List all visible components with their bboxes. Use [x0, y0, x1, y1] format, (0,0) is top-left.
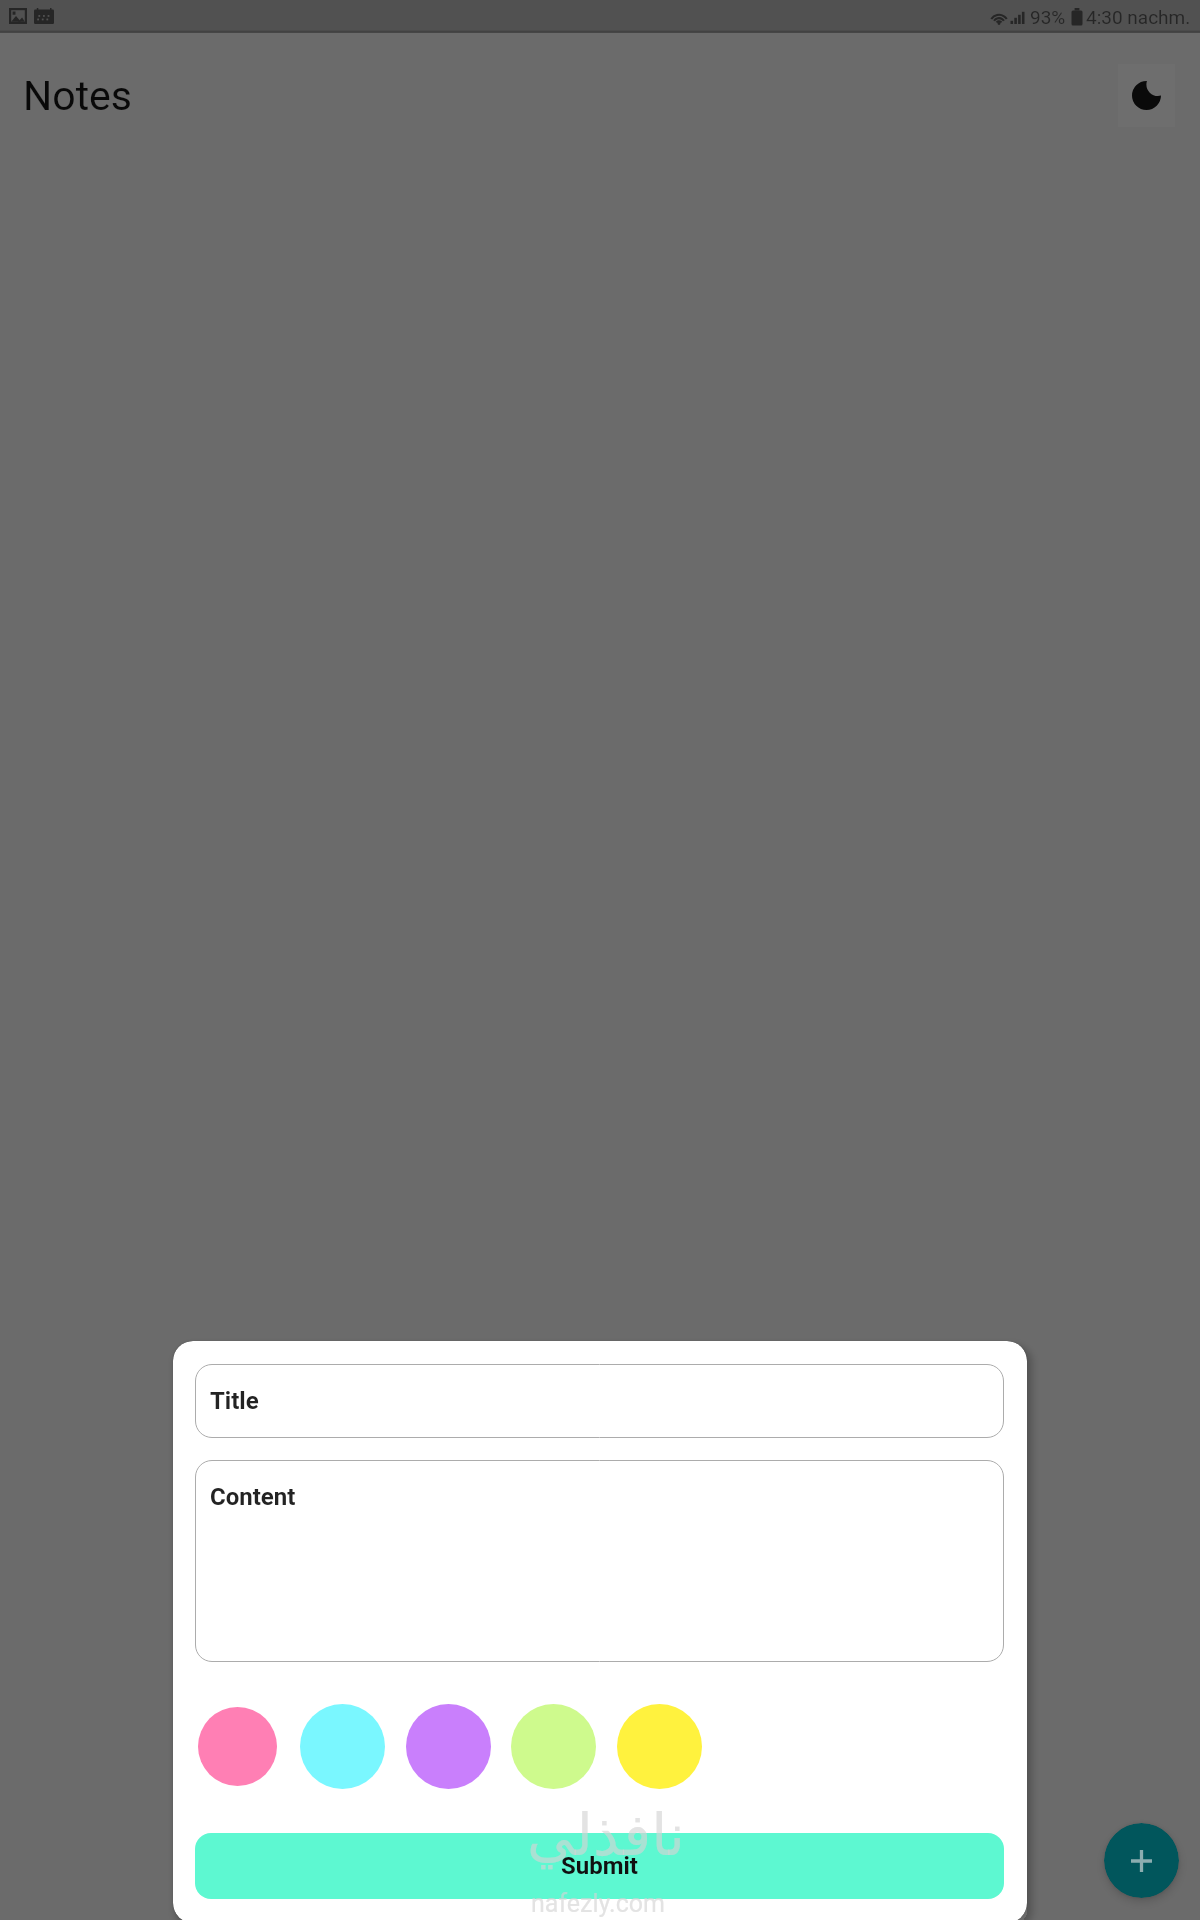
button[interactable]: Toggle dark theme: [1118, 64, 1175, 127]
staticText: Title: [210, 1387, 259, 1415]
staticText: 4:30 nachm.: [1086, 6, 1191, 28]
button[interactable]: Colour option 2: [300, 1704, 385, 1789]
button[interactable]: Colour option 5: [617, 1704, 702, 1789]
staticText: 93%: [1030, 6, 1066, 28]
staticText: Content: [210, 1483, 296, 1511]
button[interactable]: Title: [195, 1364, 1004, 1438]
button[interactable]: Add note: [1104, 1823, 1179, 1898]
staticText: nafezly.com: [531, 1889, 665, 1918]
staticText: Notes: [23, 72, 132, 120]
staticText: Submit: [561, 1852, 638, 1880]
staticText: نافذلي: [527, 1801, 685, 1869]
button[interactable]: Submit: [195, 1833, 1004, 1899]
button[interactable]: Colour option 3: [406, 1704, 491, 1789]
button[interactable]: Colour option 1: [198, 1707, 277, 1786]
button[interactable]: Colour option 4: [511, 1704, 596, 1789]
button[interactable]: Content: [195, 1460, 1004, 1662]
